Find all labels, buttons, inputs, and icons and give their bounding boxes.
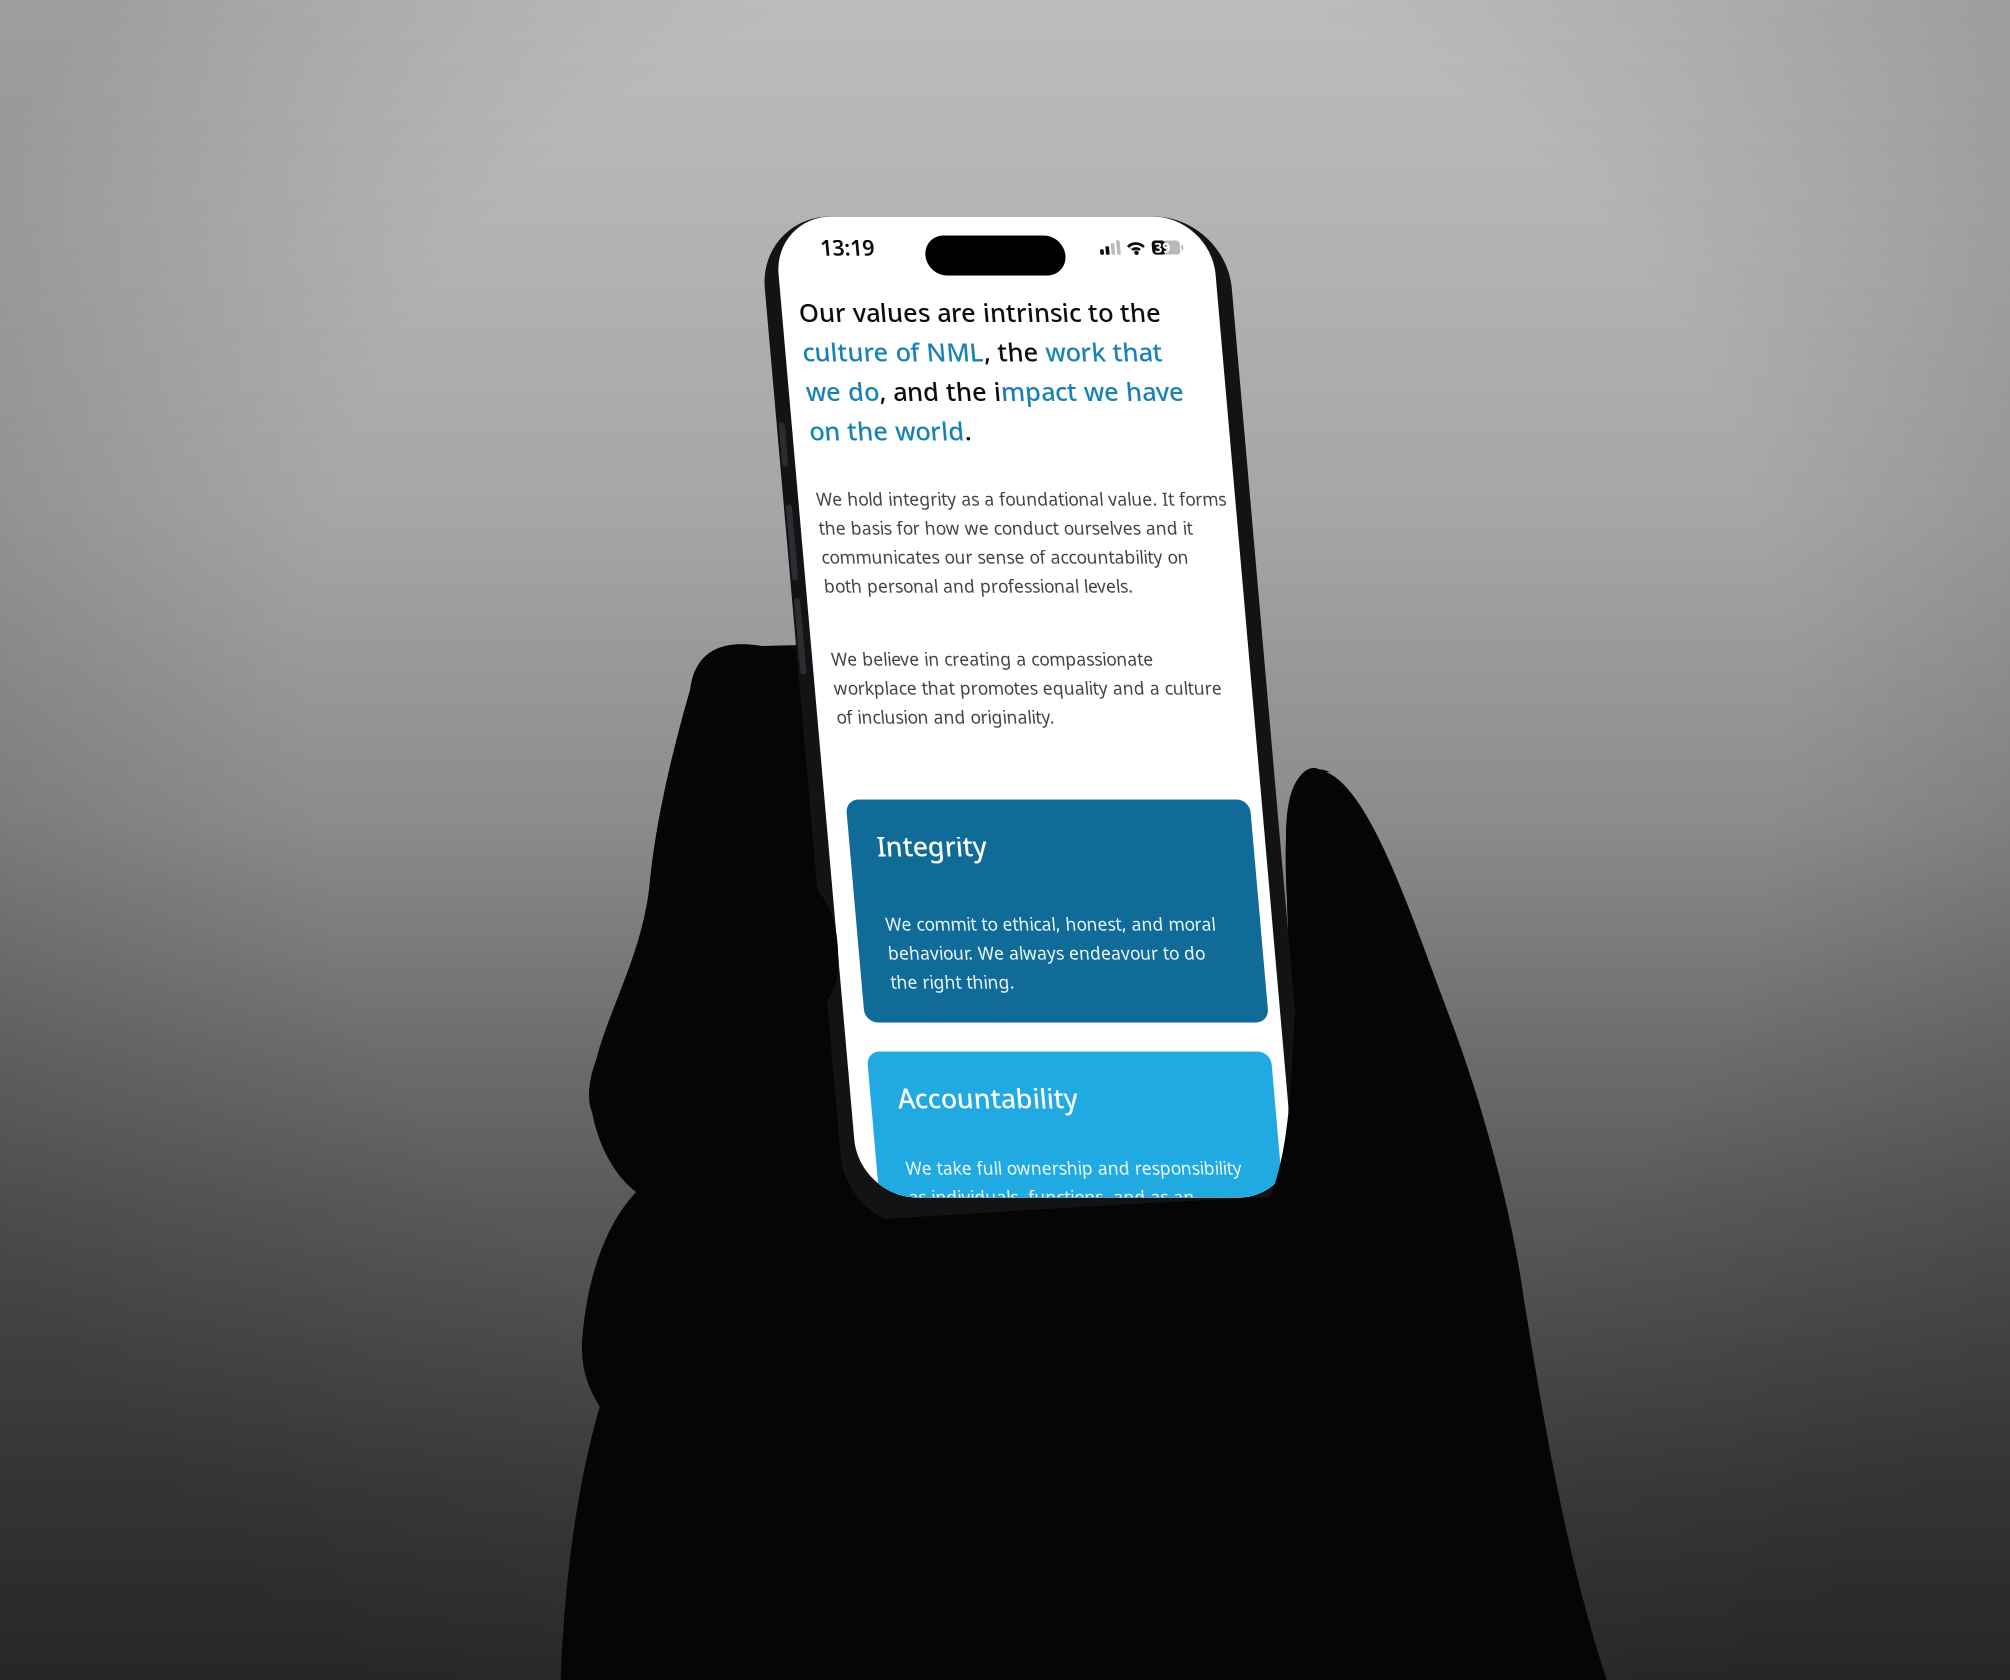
staticText: of inclusion and originality. [792, 705, 1010, 728]
staticText: communicates our sense of accountability… [791, 545, 1158, 568]
staticText: We believe in creating a compassionate [792, 647, 1114, 670]
staticText: the right thing. [823, 970, 947, 993]
staticText: mpact we have [985, 374, 1168, 408]
staticText: behaviour. We always endeavour to do [823, 941, 1140, 964]
staticText: work that [1033, 335, 1150, 368]
staticText: We hold integrity as a foundational valu… [791, 487, 1201, 510]
staticText: We commit to ethical, honest, and moral [823, 912, 1153, 935]
staticText: We take full ownership and responsibilit… [822, 1156, 1158, 1179]
staticText: , and the i [863, 374, 985, 408]
staticText: on the world [790, 414, 945, 447]
staticText: workplace that promotes equality and a c… [792, 676, 1180, 699]
staticText: Accountability [820, 1080, 1000, 1116]
staticText: Our values are intrinsic to the [790, 295, 1152, 329]
staticText: as individuals, functions, and as an [822, 1185, 1108, 1208]
staticText: . [945, 414, 952, 447]
staticText: , the [971, 335, 1033, 368]
staticText: the basis for how we conduct ourselves a… [791, 516, 1165, 539]
staticText: we do [790, 374, 863, 408]
button[interactable]: Accountability [793, 1051, 1197, 1274]
staticText: 39 [1152, 239, 1168, 256]
button[interactable]: Integrity [794, 799, 1198, 1022]
staticText: Integrity [821, 828, 931, 864]
staticText: both personal and professional levels. [791, 574, 1100, 597]
staticText: 13:19 [817, 233, 871, 262]
staticText: culture of NML [790, 335, 971, 368]
